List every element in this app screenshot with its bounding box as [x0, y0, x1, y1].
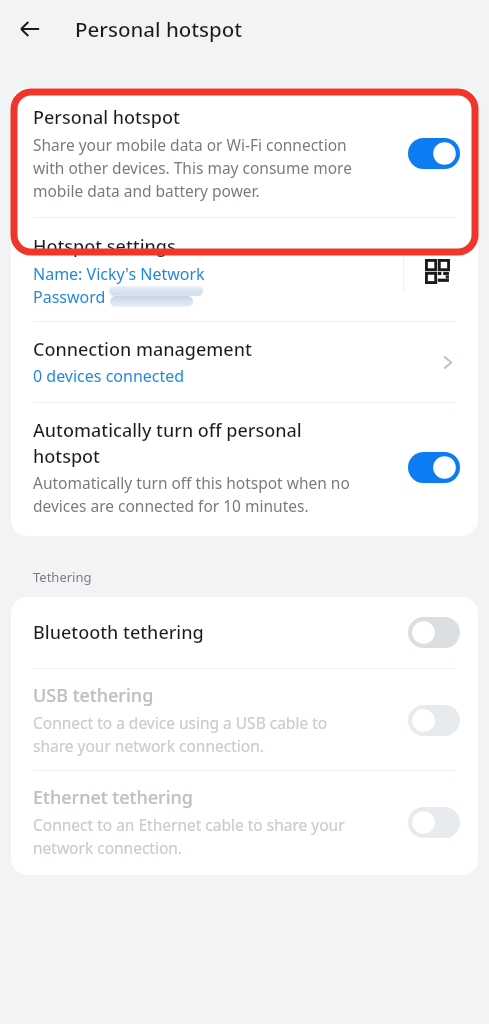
staticText: Share your mobile data or Wi-Fi connecti…: [33, 134, 363, 202]
button[interactable]: Back: [10, 9, 50, 49]
button[interactable]: Off: [408, 705, 460, 736]
staticText: Connect to a device using a USB cable to…: [33, 712, 363, 757]
staticText: Personal hotspot: [33, 105, 180, 130]
staticText: Bluetooth tethering: [33, 620, 204, 645]
button[interactable]: Automatically turn off personal hotspot: [11, 403, 478, 536]
staticText: Password: [33, 286, 106, 308]
button[interactable]: USB tethering: [11, 669, 478, 770]
button[interactable]: Bluetooth tethering: [11, 597, 478, 668]
button[interactable]: Hotspot settings: [11, 218, 478, 321]
staticText: Hotspot settings: [33, 234, 176, 259]
staticText: Connect to an Ethernet cable to share yo…: [33, 814, 363, 859]
button[interactable]: Off: [408, 807, 460, 838]
staticText: Name: Vicky's Network: [33, 263, 205, 285]
staticText: USB tethering: [33, 683, 154, 708]
staticText: Automatically turn off personal hotspot: [33, 418, 363, 468]
staticText: Ethernet tethering: [33, 785, 194, 810]
button[interactable]: Off: [408, 617, 460, 648]
button[interactable]: On: [408, 452, 460, 483]
button[interactable]: On: [408, 138, 460, 169]
staticText: Automatically turn off this hotspot when…: [33, 472, 363, 517]
staticText: Connection management: [33, 337, 252, 362]
staticText: Tethering: [33, 568, 92, 586]
button[interactable]: Personal hotspot: [11, 88, 478, 217]
staticText: 0 devices connected: [33, 365, 185, 387]
staticText: Personal hotspot: [75, 15, 243, 43]
button[interactable]: Ethernet tethering: [11, 771, 478, 875]
button[interactable]: Show QR code: [417, 251, 457, 291]
button[interactable]: Connection management: [11, 322, 478, 402]
